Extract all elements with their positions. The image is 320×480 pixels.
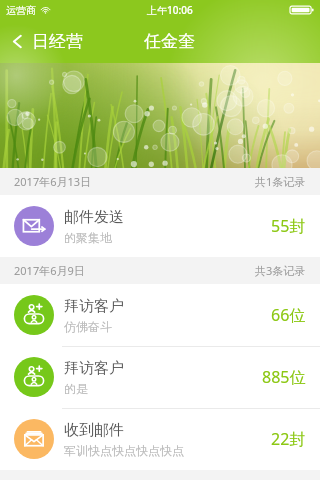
staticText: 日经营 — [32, 31, 83, 52]
staticText: 运营商 — [6, 4, 36, 17]
other: Back — [10, 34, 25, 49]
staticText: 共3条记录 — [255, 263, 306, 278]
staticText: 拜访客户 — [64, 297, 124, 316]
staticText: 2017年6月9日 — [14, 263, 85, 278]
staticText: 上午10:06 — [147, 3, 193, 17]
staticText: 军训快点快点快点快点 — [64, 443, 184, 458]
staticText: 2017年6月13日 — [14, 174, 92, 189]
button[interactable]: 拜访客户 — [0, 284, 320, 346]
staticText: 的是 — [64, 381, 88, 396]
staticText: 任金奎 — [144, 31, 195, 52]
staticText: 拜访客户 — [64, 359, 124, 378]
button[interactable]: Back — [0, 25, 93, 58]
staticText: 邮件发送 — [64, 208, 124, 227]
staticText: 885位 — [262, 366, 306, 388]
staticText: 收到邮件 — [64, 421, 124, 440]
staticText: 55封 — [271, 215, 306, 237]
staticText: 22封 — [271, 428, 306, 450]
staticText: 66位 — [271, 304, 306, 326]
staticText: 的聚集地 — [64, 230, 112, 245]
button[interactable]: 拜访客户 — [0, 346, 320, 408]
button[interactable]: 邮件发送 — [0, 195, 320, 257]
staticText: 共1条记录 — [255, 174, 306, 189]
button[interactable]: 收到邮件 — [0, 408, 320, 470]
staticText: 仿佛奋斗 — [64, 319, 112, 334]
